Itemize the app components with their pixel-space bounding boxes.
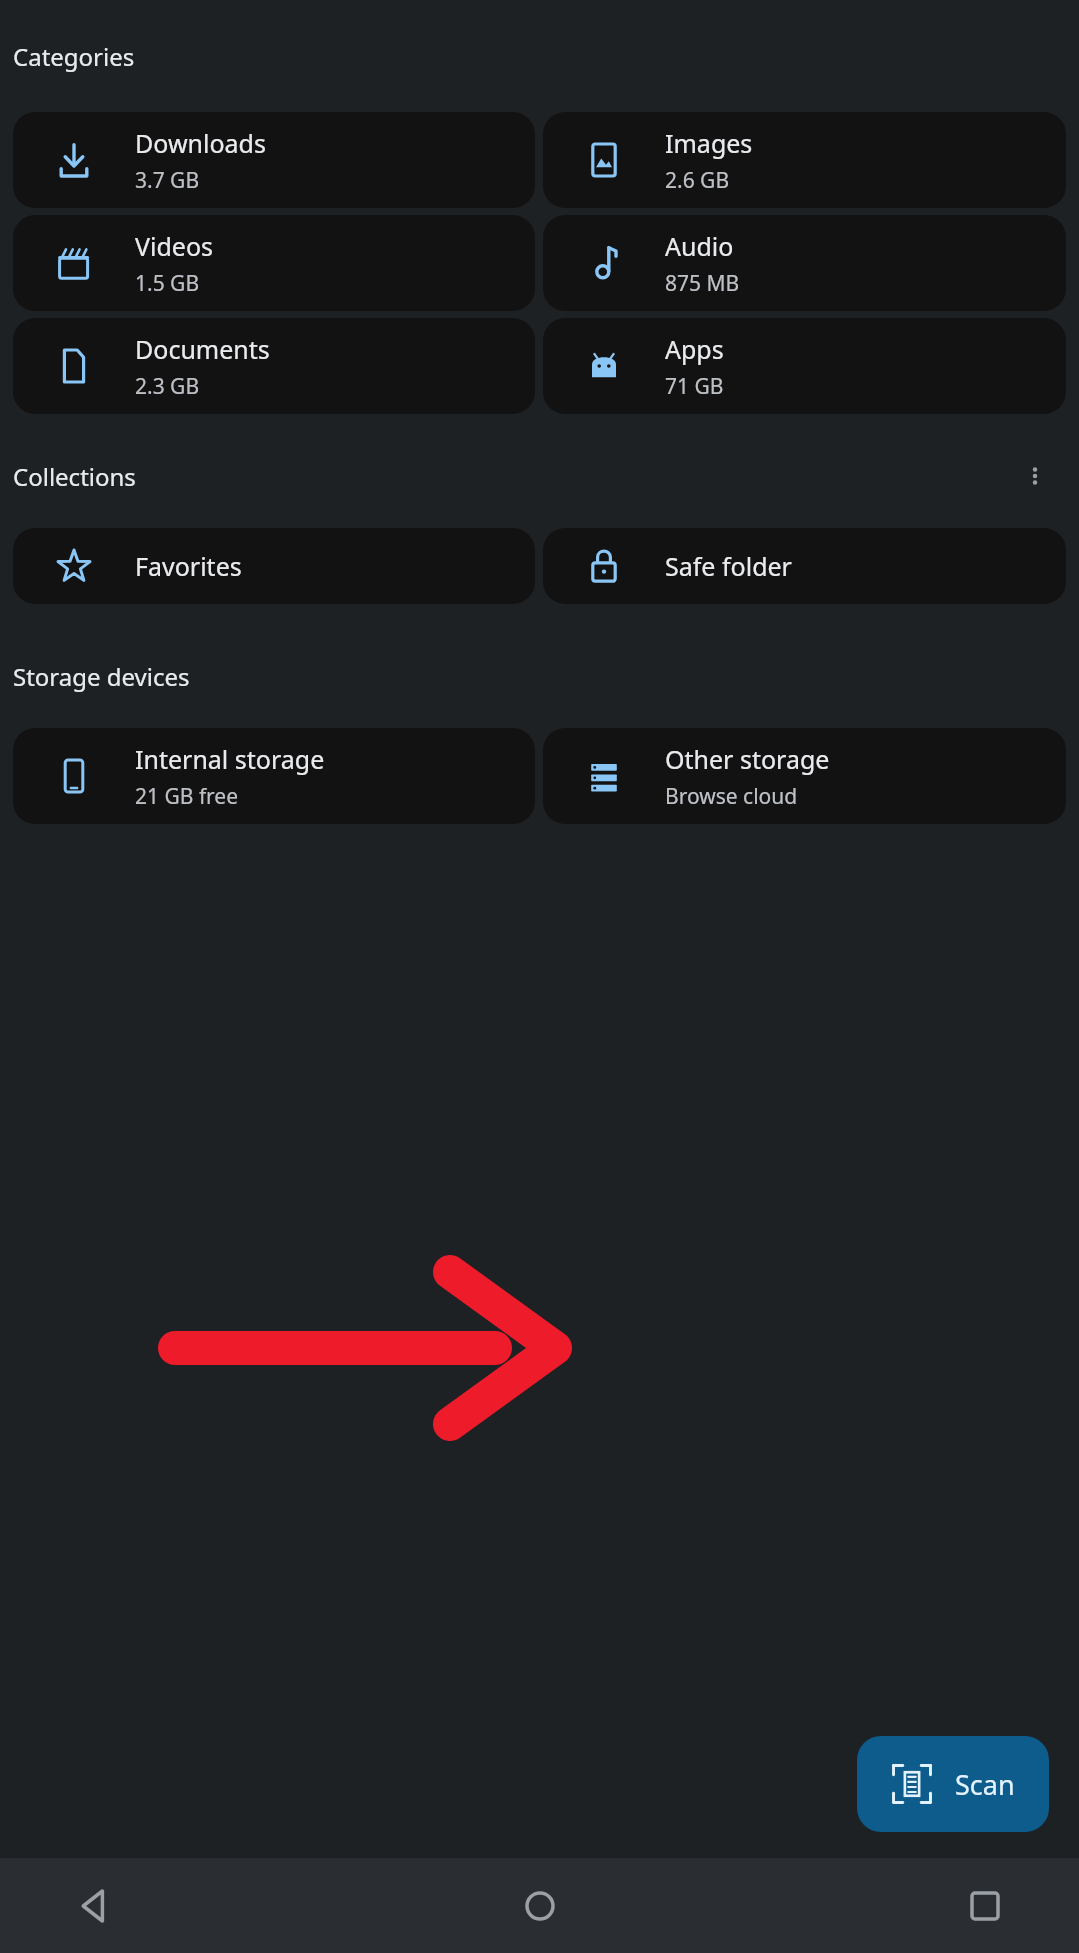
button[interactable]: Internal storage [13, 728, 535, 824]
button[interactable]: Audio [543, 215, 1066, 311]
button[interactable]: Favorites [13, 528, 535, 604]
staticText: 21 GB free [135, 782, 239, 811]
button[interactable]: Home [504, 1870, 576, 1942]
button[interactable]: More options [1011, 452, 1059, 500]
button[interactable]: Images [543, 112, 1066, 208]
staticText: Favorites [135, 549, 242, 583]
button[interactable]: Other storage [543, 728, 1066, 824]
button[interactable]: Back [58, 1870, 130, 1942]
staticText: Downloads [135, 126, 266, 160]
staticText: 1.5 GB [135, 269, 200, 298]
button[interactable]: Recents [949, 1870, 1021, 1942]
button[interactable]: Apps [543, 318, 1066, 414]
staticText: 875 MB [665, 269, 740, 298]
staticText: 2.6 GB [665, 166, 730, 195]
button[interactable]: Documents [13, 318, 535, 414]
button[interactable]: Safe folder [543, 528, 1066, 604]
staticText: Browse cloud [665, 782, 798, 811]
staticText: Apps [665, 332, 724, 366]
staticText: Images [665, 126, 753, 160]
staticText: 71 GB [665, 372, 724, 401]
staticText: Other storage [665, 742, 830, 776]
staticText: Collections [13, 460, 136, 493]
staticText: Audio [665, 229, 734, 263]
staticText: Storage devices [13, 660, 190, 693]
staticText: Videos [135, 229, 214, 263]
staticText: Documents [135, 332, 270, 366]
staticText: 2.3 GB [135, 372, 200, 401]
staticText: Categories [13, 40, 135, 73]
button[interactable]: Videos [13, 215, 535, 311]
staticText: Safe folder [665, 549, 792, 583]
staticText: Scan [955, 1766, 1015, 1803]
button[interactable]: Downloads [13, 112, 535, 208]
staticText: Internal storage [135, 742, 325, 776]
button[interactable]: Scan [891, 1736, 1015, 1832]
staticText: 3.7 GB [135, 166, 200, 195]
